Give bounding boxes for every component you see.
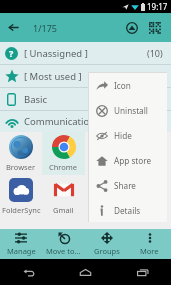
button[interactable]: Communication <box>0 111 171 132</box>
staticText: [ Most used ] <box>24 70 82 83</box>
button[interactable]: Gmail <box>42 175 85 218</box>
button[interactable]: Hide <box>89 123 167 148</box>
button[interactable]: Groups <box>85 229 128 259</box>
button[interactable]: Browser <box>0 132 42 175</box>
staticText: (10) <box>147 47 163 59</box>
button[interactable]: FolderSync <box>0 175 42 218</box>
staticText: 1/175 <box>33 22 57 34</box>
staticText: Uninstall <box>114 105 148 116</box>
button[interactable]: ? <box>0 42 171 64</box>
button[interactable]: Grid view <box>143 13 166 42</box>
button[interactable]: Chrome <box>42 132 85 175</box>
button[interactable]: App store <box>89 148 167 173</box>
staticText: 19:17 <box>147 1 168 12</box>
button[interactable]: Recent apps <box>114 259 171 285</box>
button[interactable]: Home <box>57 259 114 285</box>
staticText: App store <box>114 155 152 166</box>
button[interactable]: Basic <box>0 88 171 110</box>
staticText: Move to... <box>46 246 81 256</box>
staticText: Gmail <box>53 205 74 215</box>
staticText: Browser <box>6 162 36 172</box>
button[interactable]: Icon <box>89 73 167 98</box>
button[interactable]: Share <box>89 173 167 198</box>
button[interactable]: Back <box>0 13 26 42</box>
button[interactable]: More <box>128 229 171 259</box>
button[interactable]: Uninstall <box>89 98 167 123</box>
staticText: Basic <box>24 93 48 106</box>
staticText: Details <box>114 205 141 216</box>
staticText: Communication <box>24 115 96 128</box>
staticText: Manage <box>7 246 36 256</box>
staticText: FolderSync <box>2 205 41 215</box>
button[interactable]: Details <box>89 198 167 222</box>
button[interactable]: Back <box>0 259 57 285</box>
button[interactable]: [ Most used ] <box>0 65 171 87</box>
button[interactable]: Scroll up <box>120 13 143 42</box>
staticText: Icon <box>114 80 131 91</box>
staticText: Share <box>114 180 136 191</box>
button[interactable]: Manage <box>0 229 42 259</box>
staticText: [ Unassigned ] <box>24 47 88 60</box>
button[interactable]: Move to... <box>42 229 85 259</box>
staticText: ? <box>9 47 14 59</box>
staticText: Hide <box>114 130 132 141</box>
staticText: Chrome <box>49 162 78 172</box>
staticText: More <box>140 246 159 256</box>
staticText: Groups <box>94 246 120 256</box>
